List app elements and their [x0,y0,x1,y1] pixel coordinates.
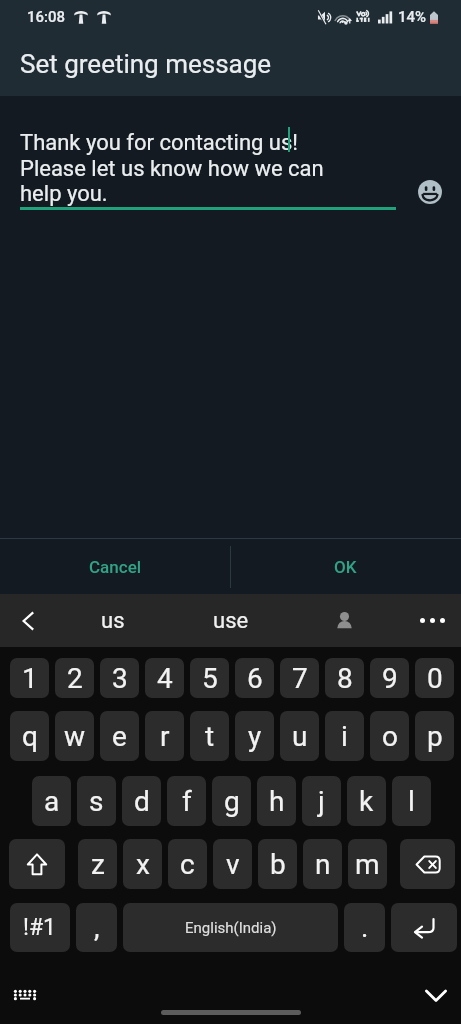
button[interactable]: Back [6,594,50,647]
button[interactable]: q [10,711,49,761]
button[interactable]: 8 [325,658,364,698]
button[interactable]: j [302,776,341,826]
staticText: 7 [292,662,308,695]
staticText: 16:08 [27,8,66,26]
staticText: x [136,848,150,881]
button[interactable]: w [55,711,94,761]
button[interactable]: 1 [10,658,49,698]
button[interactable]: n [303,839,342,889]
staticText: l [408,785,415,818]
button[interactable]: u [280,711,319,761]
button[interactable]: More options [403,594,461,647]
staticText: v [226,848,240,881]
staticText: e [112,720,127,753]
staticText: 5 [202,662,218,695]
button[interactable]: t [190,711,229,761]
staticText: us [101,608,125,634]
button[interactable]: e [100,711,139,761]
button[interactable]: 3 [100,658,139,698]
button[interactable]: Backspace [400,839,455,889]
staticText: 8 [337,662,353,695]
staticText: 4 [157,662,173,695]
button[interactable]: !#1 [10,903,70,952]
button[interactable]: k [347,776,386,826]
button[interactable]: i [325,711,364,761]
staticText: Set greeting message [20,49,272,79]
staticText: !#1 [23,914,57,941]
staticText: t [205,720,215,753]
button[interactable]: Emoji [411,173,449,211]
button[interactable]: d [122,776,161,826]
button[interactable]: l [392,776,431,826]
button[interactable]: 2 [55,658,94,698]
button[interactable]: y [235,711,274,761]
button[interactable]: b [258,839,297,889]
staticText: g [224,785,240,818]
button[interactable]: Hide keyboard [416,975,456,1015]
staticText: 6 [247,662,263,695]
staticText: q [22,720,38,753]
button[interactable]: Shift [9,839,65,889]
button[interactable]: us [58,594,168,647]
button[interactable]: g [212,776,251,826]
staticText: Thank you for contacting us! Please let … [20,130,324,206]
button[interactable]: Enter [391,903,457,952]
staticText: k [359,785,374,818]
staticText: j [318,785,325,818]
staticText: p [427,720,443,753]
staticText: 14% [398,8,427,26]
staticText: s [89,785,104,818]
button[interactable]: Cancel [0,539,230,594]
button[interactable]: Keyboard layout [5,975,45,1015]
staticText: English(India) [185,919,277,937]
button[interactable]: 5 [190,658,229,698]
staticText: use [213,608,249,634]
button[interactable]: 0 [415,658,454,698]
button[interactable]: x [123,839,162,889]
button[interactable]: p [415,711,454,761]
staticText: o [382,720,398,753]
staticText: d [134,785,150,818]
staticText: . [361,911,369,944]
button[interactable]: , [76,903,117,952]
staticText: i [341,720,348,753]
button[interactable]: Contacts [312,594,376,647]
button[interactable]: OK [230,539,461,594]
button[interactable]: 9 [370,658,409,698]
staticText: y [248,720,262,753]
staticText: b [270,848,286,881]
staticText: u [292,720,308,753]
button[interactable]: s [77,776,116,826]
staticText: m [355,848,380,881]
staticText: r [160,720,170,753]
staticText: , [94,911,100,944]
staticText: 2 [67,662,83,695]
button[interactable]: h [257,776,296,826]
staticText: 1 [22,662,38,695]
button[interactable]: a [32,776,71,826]
staticText: w [64,720,86,753]
button[interactable]: English(India) [123,903,338,952]
button[interactable]: v [213,839,252,889]
button[interactable]: 7 [280,658,319,698]
staticText: f [182,785,192,818]
button[interactable]: o [370,711,409,761]
staticText: 9 [382,662,398,695]
staticText: a [44,785,60,818]
staticText: 0 [427,662,443,695]
staticText: OK [334,557,357,577]
button[interactable]: 4 [145,658,184,698]
button[interactable]: 6 [235,658,274,698]
staticText: c [180,848,195,881]
button[interactable]: m [348,839,387,889]
staticText: z [91,848,105,881]
button[interactable]: r [145,711,184,761]
staticText: h [269,785,285,818]
button[interactable]: use [176,594,286,647]
button[interactable]: c [168,839,207,889]
staticText: Cancel [89,557,142,577]
button[interactable]: z [78,839,117,889]
staticText: n [315,848,331,881]
button[interactable]: f [167,776,206,826]
button[interactable]: . [344,903,385,952]
